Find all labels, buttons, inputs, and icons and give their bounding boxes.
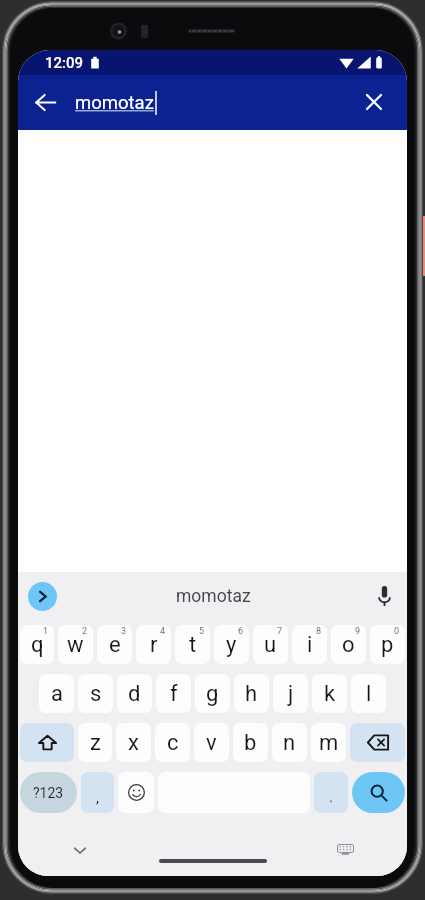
button[interactable]: b (233, 723, 268, 762)
staticText: 2 (82, 626, 88, 637)
staticText: s (90, 681, 102, 707)
staticText: i (307, 632, 313, 658)
staticText: 5 (199, 626, 205, 637)
staticText: 1 (43, 626, 49, 637)
staticText: t (189, 632, 197, 658)
staticText: y (226, 632, 237, 658)
staticText: d (128, 681, 141, 707)
button[interactable]: c (155, 723, 190, 762)
staticText: momotaz (75, 92, 154, 114)
button[interactable]: Symbols (20, 772, 77, 813)
staticText: u (264, 632, 277, 658)
button[interactable]: Backspace (350, 723, 405, 762)
button[interactable]: z (78, 723, 112, 762)
staticText: g (206, 681, 219, 707)
button[interactable]: f (156, 674, 191, 713)
staticText: b (244, 730, 257, 756)
button[interactable]: i (292, 625, 327, 664)
staticText: 9 (355, 626, 361, 637)
staticText: momotaz (176, 586, 251, 607)
staticText: q (31, 632, 44, 658)
button[interactable]: Period (314, 772, 348, 813)
staticText: o (342, 632, 355, 658)
button[interactable]: u (253, 625, 288, 664)
button[interactable]: j (273, 674, 308, 713)
button[interactable]: y (214, 625, 249, 664)
staticText: w (67, 632, 84, 658)
button[interactable]: e (97, 625, 132, 664)
button[interactable]: Voice input (370, 582, 398, 610)
button[interactable]: k (312, 674, 347, 713)
staticText: x (128, 730, 139, 756)
button[interactable]: o (331, 625, 366, 664)
button[interactable]: v (194, 723, 229, 762)
button[interactable]: w (58, 625, 93, 664)
button[interactable]: s (78, 674, 113, 713)
button[interactable]: Shift (20, 723, 74, 762)
staticText: l (366, 681, 372, 707)
button[interactable]: a (39, 674, 74, 713)
staticText: z (90, 730, 101, 756)
staticText: r (150, 632, 158, 658)
staticText: f (170, 681, 178, 707)
staticText: n (283, 730, 296, 756)
button[interactable]: m (311, 723, 346, 762)
button[interactable]: x (116, 723, 151, 762)
button[interactable]: h (234, 674, 269, 713)
staticText: 3 (121, 626, 127, 637)
staticText: 6 (238, 626, 244, 637)
staticText: 8 (316, 626, 322, 637)
button[interactable]: Change keyboard (331, 835, 359, 863)
staticText: 12:09 (45, 54, 84, 72)
staticText: h (245, 681, 258, 707)
staticText: 0 (394, 626, 400, 637)
staticText: v (206, 730, 217, 756)
staticText: 7 (277, 626, 283, 637)
staticText: j (288, 681, 294, 707)
button[interactable]: q (20, 625, 54, 664)
button[interactable]: Comma (81, 772, 114, 813)
button[interactable]: p (370, 625, 405, 664)
staticText: . (329, 788, 333, 806)
button[interactable]: t (175, 625, 210, 664)
button[interactable]: Search (352, 772, 405, 813)
button[interactable] (118, 772, 154, 813)
button[interactable]: n (272, 723, 307, 762)
button[interactable]: g (195, 674, 230, 713)
staticText: , (96, 789, 99, 807)
staticText: m (319, 730, 339, 756)
button[interactable]: l (351, 674, 386, 713)
button[interactable]: r (136, 625, 171, 664)
staticText: a (51, 681, 63, 707)
button[interactable]: d (117, 674, 152, 713)
staticText: k (324, 681, 336, 707)
staticText: c (167, 730, 179, 756)
staticText: 4 (160, 626, 166, 637)
button[interactable]: Back (25, 82, 65, 122)
button[interactable]: More suggestions (28, 582, 57, 611)
button[interactable]: Hide keyboard (66, 836, 94, 864)
staticText: p (381, 632, 394, 658)
staticText: e (109, 632, 121, 658)
staticText: ?123 (33, 785, 64, 801)
button[interactable]: Clear search (354, 82, 394, 122)
